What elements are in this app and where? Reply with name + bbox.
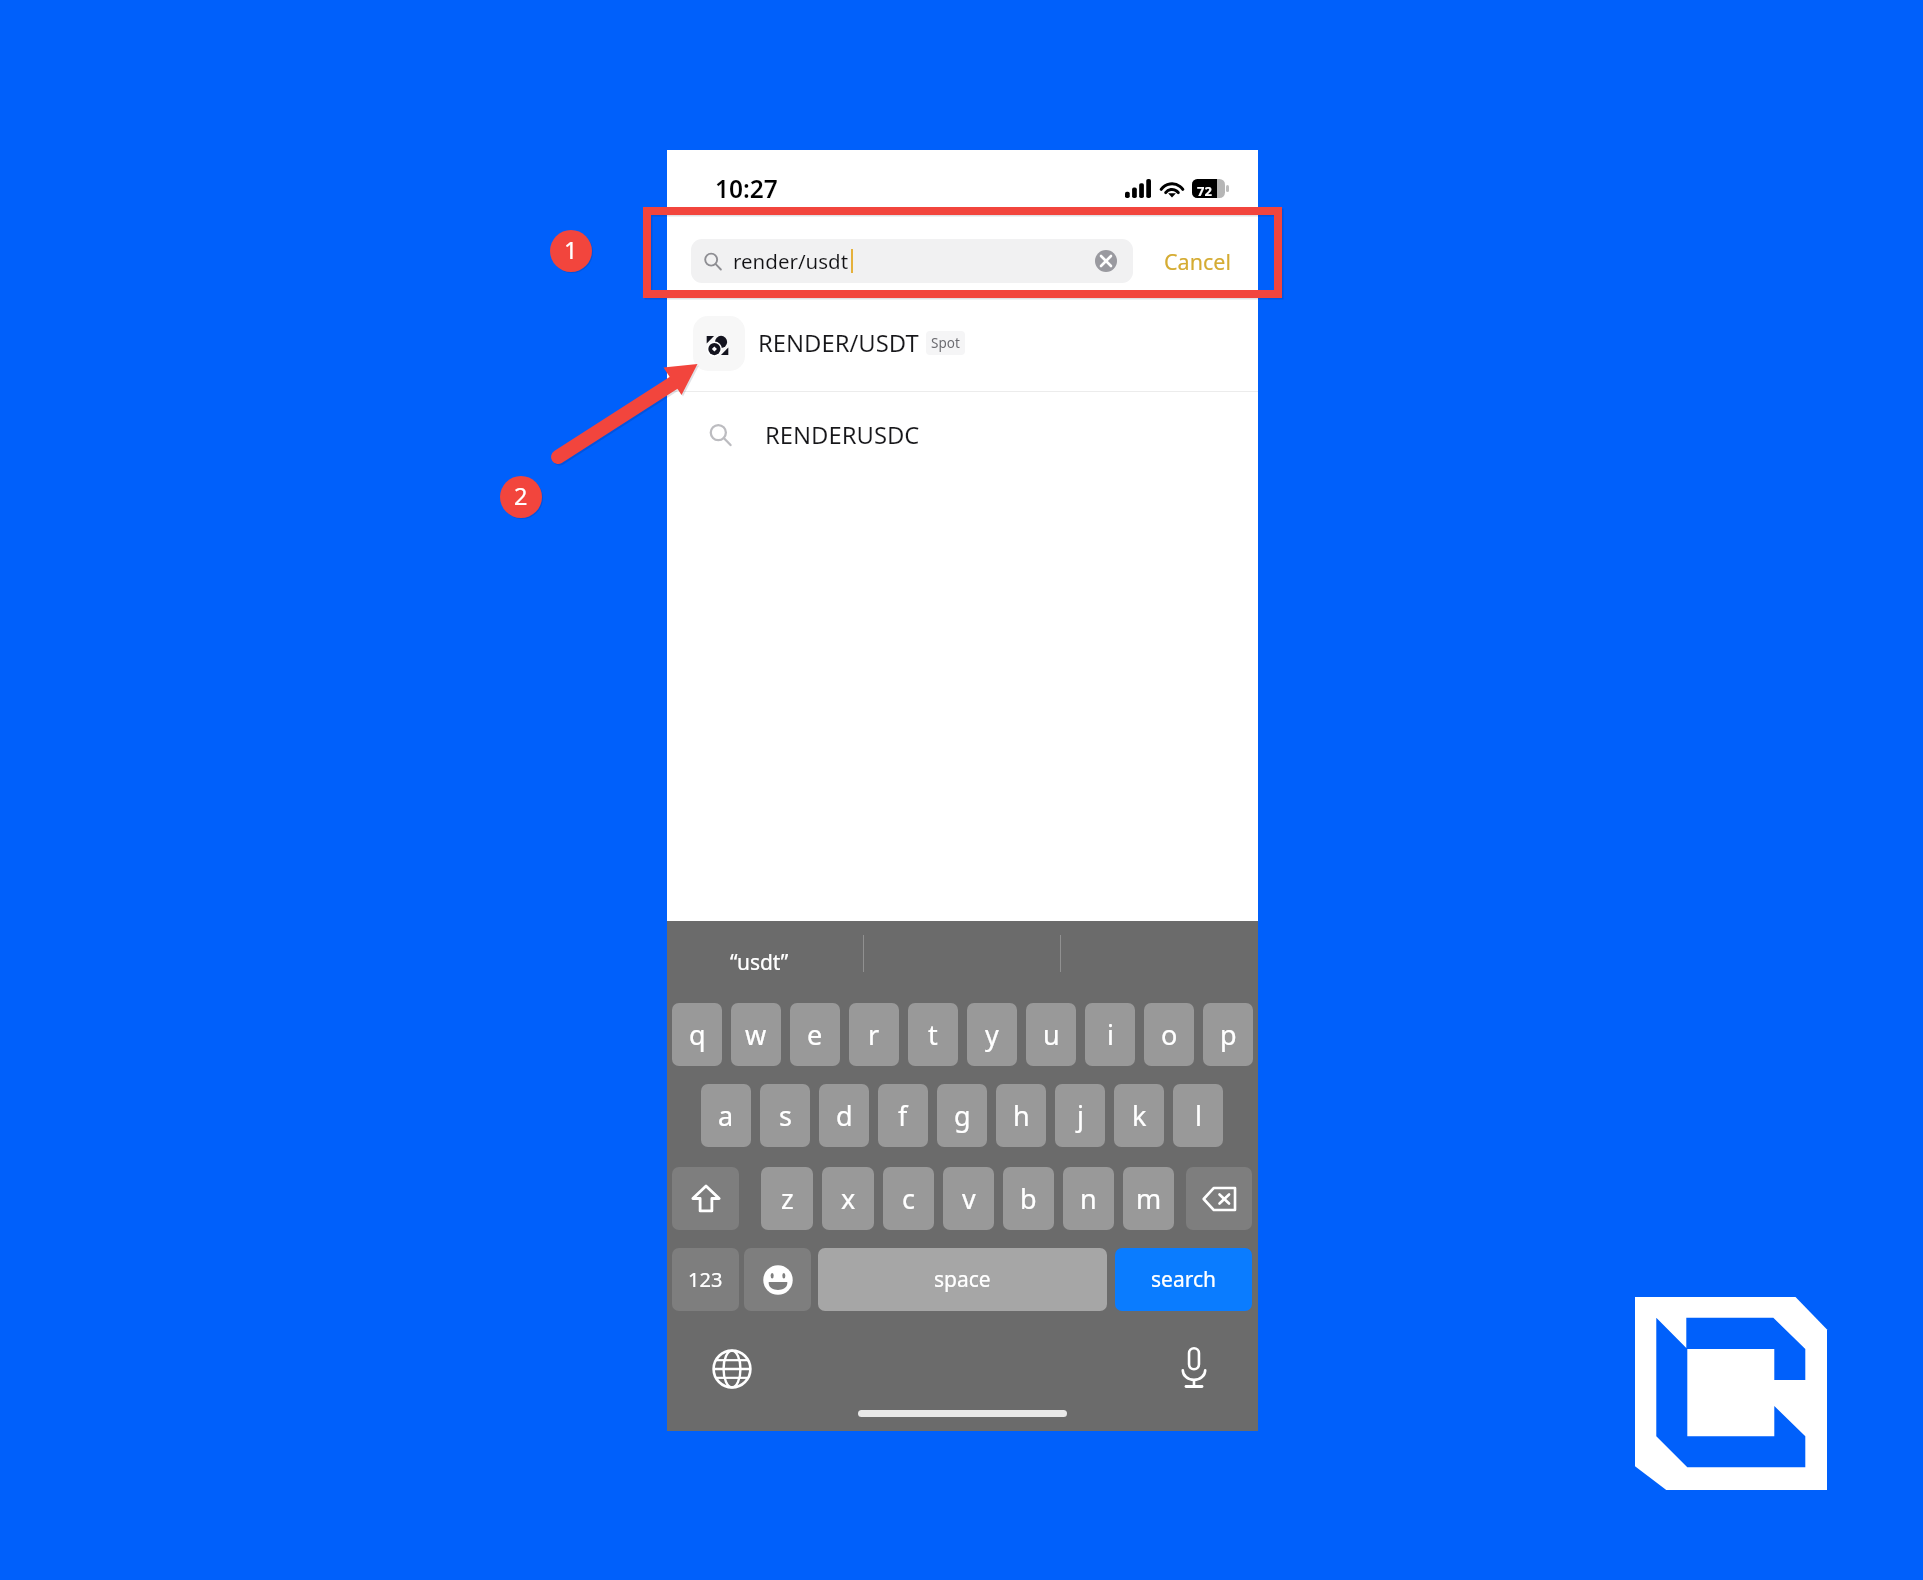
staticText: RENDER/USDT <box>758 327 919 359</box>
staticText: q <box>689 1016 706 1053</box>
staticText: w <box>745 1016 767 1053</box>
staticText: c <box>902 1180 915 1217</box>
button[interactable]: l <box>1173 1084 1223 1147</box>
button[interactable]: RENDER/USDT <box>667 298 1258 388</box>
button[interactable]: c <box>883 1167 934 1230</box>
staticText: f <box>898 1097 908 1134</box>
button[interactable]: b <box>1003 1167 1054 1230</box>
button[interactable]: m <box>1123 1167 1174 1230</box>
staticText: u <box>1043 1016 1060 1053</box>
staticText: “usdt” <box>730 948 789 977</box>
staticText: d <box>836 1097 853 1134</box>
button[interactable]: u <box>1026 1003 1076 1066</box>
button[interactable]: a <box>701 1084 751 1147</box>
staticText: RENDERUSDC <box>765 419 920 451</box>
button[interactable]: p <box>1203 1003 1253 1066</box>
button[interactable]: RENDERUSDC <box>667 391 1258 478</box>
staticText: space <box>934 1265 991 1294</box>
staticText: h <box>1013 1097 1030 1134</box>
staticText: p <box>1220 1016 1237 1053</box>
button[interactable]: Clear text <box>1095 250 1117 272</box>
staticText: v <box>962 1180 976 1217</box>
staticText: i <box>1107 1016 1114 1053</box>
staticText: Cancel <box>1164 247 1231 276</box>
button[interactable]: t <box>908 1003 958 1066</box>
button[interactable]: e <box>790 1003 840 1066</box>
button[interactable]: Change keyboard <box>707 1344 757 1394</box>
staticText: k <box>1132 1097 1147 1134</box>
button[interactable]: s <box>760 1084 810 1147</box>
staticText: t <box>928 1016 938 1053</box>
button[interactable]: h <box>996 1084 1046 1147</box>
button[interactable]: Emoji keyboard <box>744 1248 811 1311</box>
staticText: l <box>1195 1097 1202 1134</box>
staticText: g <box>954 1097 971 1134</box>
staticText: 72 <box>1197 182 1212 200</box>
staticText: n <box>1080 1180 1097 1217</box>
button[interactable]: k <box>1114 1084 1164 1147</box>
button[interactable]: Cancel <box>1155 239 1240 283</box>
staticText: e <box>807 1016 823 1053</box>
staticText: 1 <box>564 234 578 266</box>
button[interactable]: search <box>1115 1248 1252 1311</box>
button[interactable]: x <box>822 1167 874 1230</box>
button[interactable]: w <box>731 1003 781 1066</box>
button[interactable]: Backspace <box>1186 1167 1252 1230</box>
button[interactable]: g <box>937 1084 987 1147</box>
button[interactable]: render/usdt <box>691 239 1133 283</box>
staticText: render/usdt <box>733 247 849 275</box>
button[interactable]: y <box>967 1003 1017 1066</box>
staticText: a <box>718 1097 734 1134</box>
button[interactable]: j <box>1055 1084 1105 1147</box>
staticText: m <box>1136 1180 1162 1217</box>
staticText: 2 <box>514 480 528 512</box>
button[interactable]: space <box>818 1248 1107 1311</box>
staticText: search <box>1151 1265 1216 1294</box>
button[interactable]: Dictation <box>1169 1343 1219 1393</box>
button[interactable]: Shift <box>672 1167 739 1230</box>
staticText: Spot <box>931 334 960 352</box>
staticText: 10:27 <box>715 172 778 205</box>
button[interactable]: o <box>1144 1003 1194 1066</box>
button[interactable]: f <box>878 1084 928 1147</box>
staticText: o <box>1161 1016 1178 1053</box>
button[interactable]: z <box>761 1167 813 1230</box>
button[interactable]: n <box>1063 1167 1114 1230</box>
staticText: y <box>985 1016 999 1053</box>
staticText: r <box>868 1016 880 1053</box>
staticText: s <box>779 1097 792 1134</box>
staticText: z <box>781 1180 794 1217</box>
button[interactable]: v <box>943 1167 994 1230</box>
staticText: j <box>1077 1097 1084 1134</box>
staticText: 123 <box>688 1266 723 1293</box>
staticText: x <box>841 1180 856 1217</box>
button[interactable]: 123 <box>672 1248 739 1311</box>
staticText: b <box>1020 1180 1037 1217</box>
button[interactable]: i <box>1085 1003 1135 1066</box>
button[interactable]: d <box>819 1084 869 1147</box>
button[interactable]: q <box>672 1003 722 1066</box>
button[interactable]: r <box>849 1003 899 1066</box>
